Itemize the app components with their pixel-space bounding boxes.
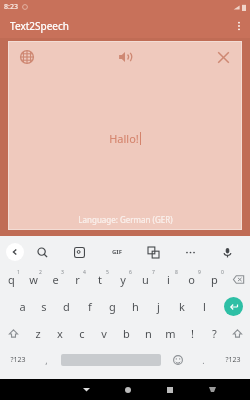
staticText: ?123 [225,355,241,365]
button[interactable]: t [88,266,111,293]
button[interactable]: Backspace [226,266,250,293]
button[interactable]: More options [228,15,250,37]
staticText: x [57,326,63,341]
staticText: w [29,272,38,287]
staticText: c [79,326,85,341]
staticText: ? [212,326,217,341]
staticText: r [75,272,80,287]
button[interactable]: d [55,293,78,320]
button[interactable]: g [101,293,124,320]
button[interactable]: Expand toolbar [6,243,24,261]
staticText: z [35,326,41,341]
button[interactable]: s [33,293,55,320]
button[interactable]: Enter [216,293,250,320]
staticText: 8:23 [4,2,18,12]
button[interactable]: Clear text [210,44,236,70]
staticText: u [142,272,149,287]
staticText: 8 [175,269,178,276]
button[interactable]: z [26,320,49,347]
staticText: s [41,299,47,314]
staticText: b [123,326,130,341]
button[interactable]: Search [24,238,61,266]
staticText: 4 [83,269,86,276]
button[interactable]: More [172,238,209,266]
staticText: 3 [61,269,64,276]
button[interactable]: Hide keyboard [65,379,107,400]
button[interactable]: j [147,293,170,320]
button[interactable]: x [49,320,71,347]
button[interactable]: , [35,347,58,373]
button[interactable]: q [0,266,22,293]
staticText: g [109,299,116,314]
staticText: 0 [221,269,224,276]
button[interactable]: GIF [98,238,135,266]
staticText: k [179,299,185,314]
staticText: o [188,272,195,287]
button[interactable]: p [203,266,226,293]
staticText: l [203,299,206,314]
button[interactable]: Home [107,379,149,400]
staticText: d [63,299,70,314]
button[interactable]: Voice input [209,238,246,266]
staticText: f [88,299,92,314]
button[interactable]: Select language [14,44,40,70]
staticText: 2 [39,269,42,276]
staticText: v [101,326,107,341]
button[interactable]: Translate [135,238,172,266]
button[interactable]: ?123 [0,347,35,373]
button[interactable]: n [137,320,159,347]
button[interactable]: m [159,320,181,347]
staticText: j [157,299,160,314]
staticText: Hallo! [109,131,139,146]
button[interactable]: h [124,293,147,320]
staticText: 9 [198,269,201,276]
staticText: ! [191,326,194,341]
staticText: n [145,326,152,341]
staticText: p [211,272,218,287]
staticText: q [8,272,15,287]
staticText: a [19,299,26,314]
button[interactable]: e [44,266,66,293]
button[interactable]: Switch keyboard [191,379,233,400]
button[interactable]: l [193,293,216,320]
button[interactable]: Shift [0,320,26,347]
button[interactable]: u [134,266,157,293]
staticText: Text2Speech [10,19,69,33]
button[interactable]: ? [203,320,225,347]
button[interactable]: Hallo! [8,73,242,214]
button[interactable]: Speak [111,43,139,71]
button[interactable]: Emoji [164,347,192,373]
button[interactable]: f [78,293,101,320]
button[interactable]: Recent apps [149,379,191,400]
staticText: t [98,272,102,287]
button[interactable]: i [157,266,180,293]
button[interactable]: y [111,266,134,293]
staticText: ?123 [10,355,26,365]
staticText: h [132,299,139,314]
button[interactable]: r [66,266,88,293]
staticText: i [167,272,170,287]
staticText: 6 [129,269,132,276]
staticText: m [165,326,176,341]
button[interactable]: Stickers [61,238,98,266]
staticText: GIF [112,248,122,256]
staticText: 7 [152,269,155,276]
button[interactable]: v [93,320,115,347]
staticText: e [52,272,59,287]
button[interactable]: ! [181,320,203,347]
button[interactable]: o [180,266,203,293]
staticText: Language: German (GER) [78,214,173,225]
button[interactable]: k [170,293,193,320]
button[interactable]: c [71,320,93,347]
staticText: 1 [17,269,20,276]
staticText: . [202,354,205,366]
button[interactable]: . [192,347,215,373]
button[interactable]: Shift [225,320,250,347]
button[interactable]: b [115,320,137,347]
button[interactable]: w [22,266,44,293]
staticText: 5 [106,269,109,276]
staticText: y [120,272,126,287]
button[interactable]: a [11,293,33,320]
button[interactable]: ?123 [215,347,250,373]
